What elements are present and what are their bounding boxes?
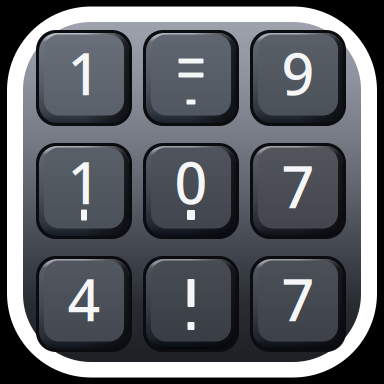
button[interactable]: One [36, 30, 132, 126]
button[interactable]: Seven [250, 256, 346, 352]
staticText: 4 [67, 261, 100, 337]
button[interactable]: Zero [143, 143, 239, 239]
button[interactable]: One comma [36, 143, 132, 239]
button[interactable]: Equals [143, 30, 239, 126]
staticText: 7 [281, 148, 314, 224]
staticText: 1 [67, 144, 100, 220]
staticText: 7 [281, 261, 314, 337]
button[interactable]: Four [36, 256, 132, 352]
staticText: 0 [174, 144, 207, 220]
button[interactable]: Seven [250, 143, 346, 239]
staticText: 1 [67, 35, 100, 111]
button[interactable]: Exclamation mark [143, 256, 239, 352]
button[interactable]: Nine [250, 30, 346, 126]
staticText: 9 [281, 35, 314, 111]
